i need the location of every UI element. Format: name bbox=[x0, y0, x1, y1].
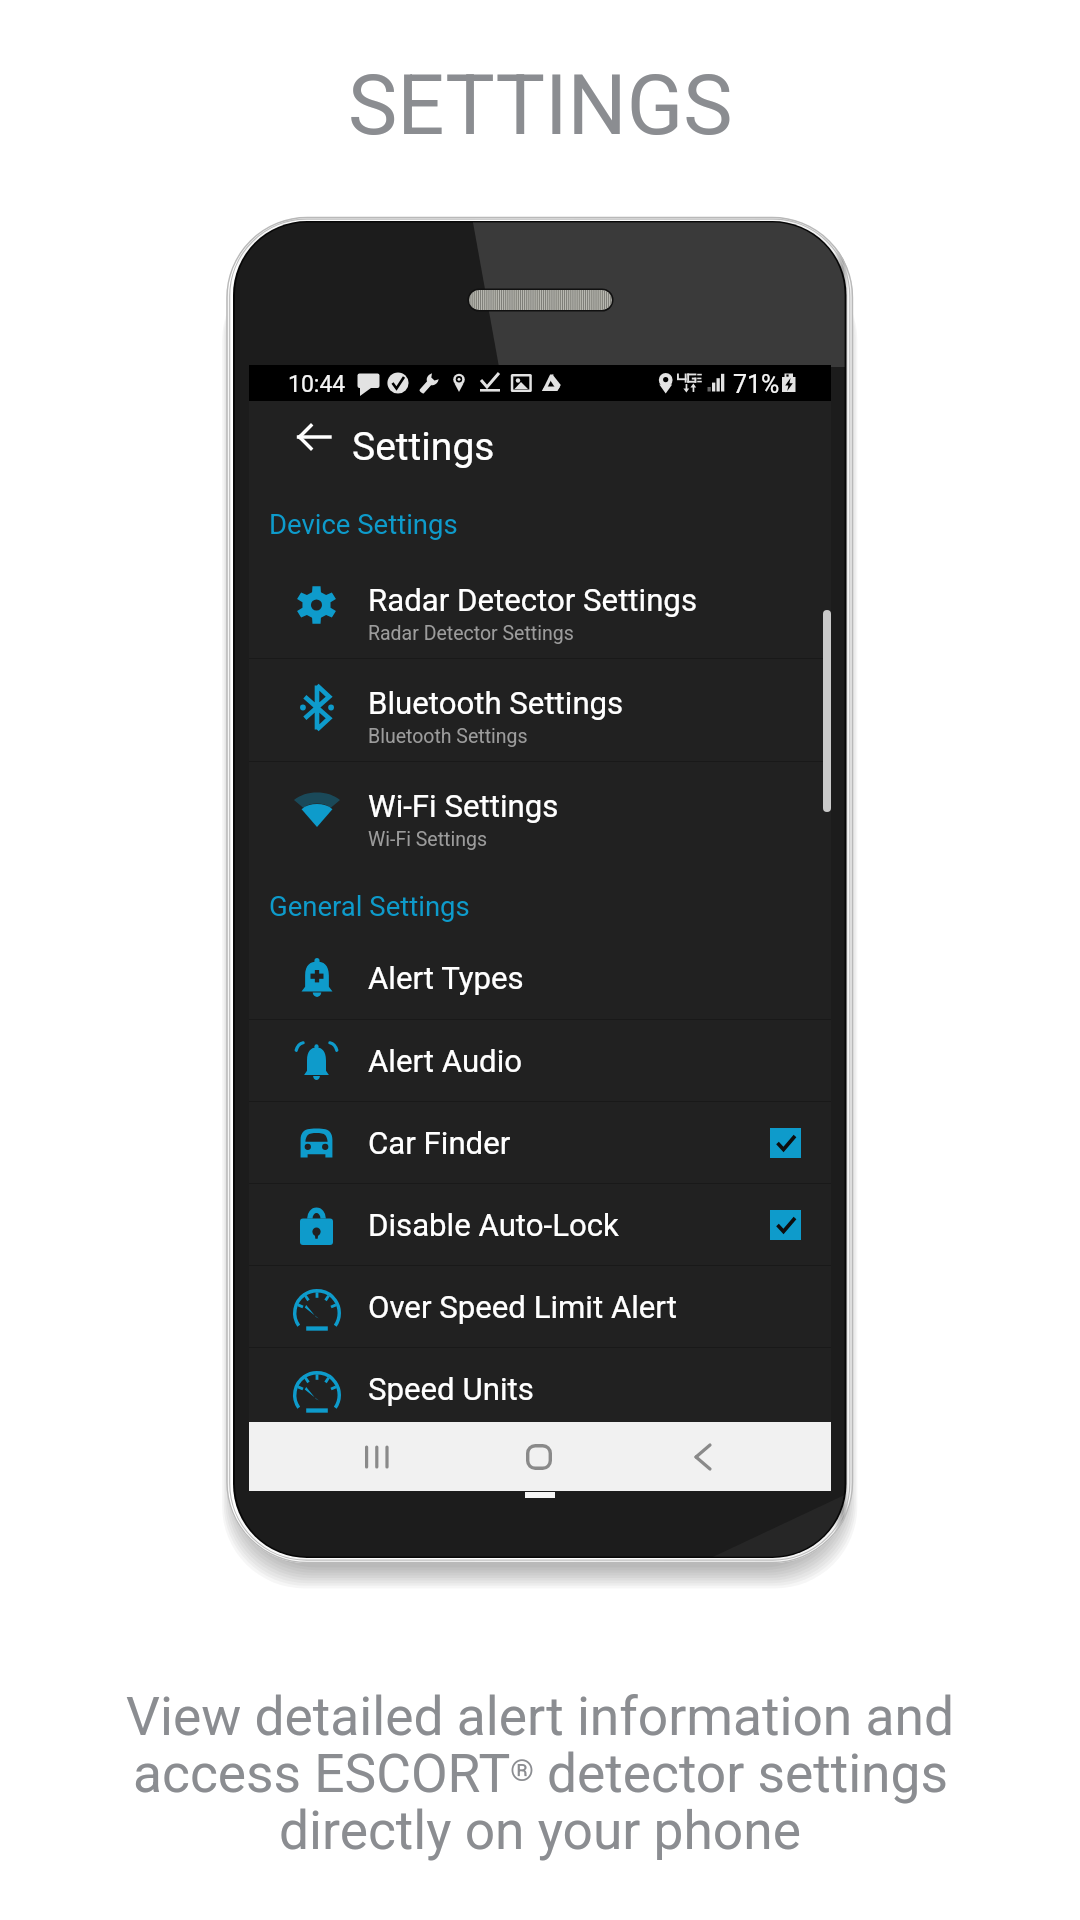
button[interactable]: Over Speed Limit Alert bbox=[249, 1266, 831, 1347]
button[interactable]: Speed Units bbox=[249, 1348, 831, 1423]
staticText: Radar Detector Settings bbox=[368, 622, 574, 645]
staticText: General Settings bbox=[269, 890, 470, 922]
button[interactable]: Back bbox=[249, 401, 831, 484]
staticText: access ESCORT® detector settings bbox=[133, 1743, 948, 1805]
button[interactable]: Home bbox=[512, 1422, 566, 1491]
button[interactable]: Bluetooth Settings bbox=[249, 659, 831, 760]
staticText: Wi-Fi Settings bbox=[368, 828, 487, 851]
button[interactable]: Wi-Fi Settings bbox=[249, 762, 831, 863]
staticText: directly on your phone bbox=[279, 1800, 801, 1862]
staticText: Alert Types bbox=[368, 960, 524, 997]
button[interactable]: Back bbox=[678, 1422, 728, 1491]
staticText: View detailed alert information and bbox=[126, 1686, 954, 1748]
staticText: Bluetooth Settings bbox=[368, 725, 528, 748]
staticText: 71% bbox=[733, 370, 780, 399]
button[interactable]: Recent apps bbox=[349, 1422, 404, 1491]
staticText: Wi-Fi Settings bbox=[368, 788, 559, 825]
staticText: Radar Detector Settings bbox=[368, 582, 697, 619]
staticText: Speed Units bbox=[368, 1371, 534, 1408]
staticText: SETTINGS bbox=[348, 57, 733, 154]
staticText: Car Finder bbox=[368, 1125, 511, 1162]
staticText: Over Speed Limit Alert bbox=[368, 1289, 677, 1326]
staticText: Bluetooth Settings bbox=[368, 685, 624, 722]
staticText: 10:44 bbox=[288, 371, 346, 398]
button[interactable]: Disable Auto-Lock bbox=[249, 1184, 831, 1265]
button[interactable]: Alert Audio bbox=[249, 1020, 831, 1101]
staticText: Disable Auto-Lock bbox=[368, 1207, 619, 1244]
staticText: Device Settings bbox=[269, 508, 458, 540]
button[interactable]: Alert Types bbox=[249, 937, 831, 1019]
staticText: Alert Audio bbox=[368, 1043, 523, 1080]
button[interactable]: Radar Detector Settings bbox=[249, 556, 831, 658]
button[interactable]: Car Finder bbox=[249, 1102, 831, 1183]
button[interactable]: Back bbox=[291, 417, 337, 457]
staticText: Settings bbox=[352, 424, 495, 470]
